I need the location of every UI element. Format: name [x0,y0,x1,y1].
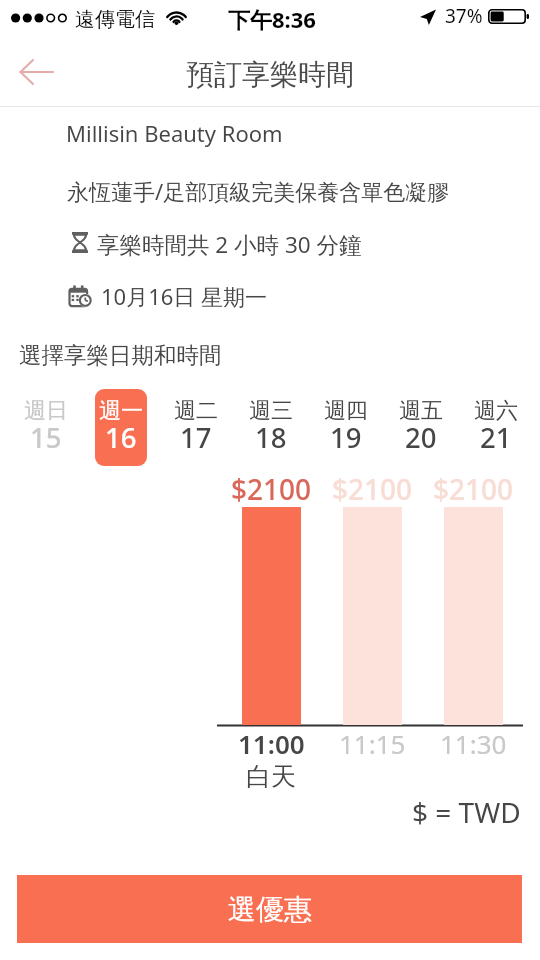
staticText: Millisin Beauty Room [66,118,283,148]
staticText: 週四 [324,397,368,425]
staticText: 週五 [399,397,443,425]
button[interactable]: 選優惠 [17,875,522,943]
button[interactable]: 週六 [458,389,533,466]
staticText: 17 [180,419,212,456]
staticText: 永恆蓮手/足部頂級完美保養含單色凝膠 [67,176,450,206]
button[interactable]: 週五 [383,389,458,466]
staticText: 16 [105,419,137,456]
staticText: 37% [445,3,483,29]
staticText: 11:30 [440,726,507,761]
staticText: $2100 [332,470,413,508]
staticText: 20 [405,419,437,456]
button[interactable]: 週二 [158,389,233,466]
staticText: 享樂時間共 2 小時 30 分鐘 [97,229,362,260]
staticText: $2100 [433,470,514,508]
staticText: 10月16日 星期一 [101,281,268,311]
staticText: 11:00 [238,726,305,761]
button[interactable]: 週日 [8,389,83,466]
button[interactable]: $2100 [221,470,321,790]
staticText: 預訂享樂時間 [186,57,354,92]
staticText: $ = TWD [412,793,521,831]
staticText: 白天 [246,761,296,792]
staticText: 11:15 [339,726,406,761]
staticText: 週日 [24,397,68,425]
staticText: 週二 [174,397,218,425]
staticText: 週一 [99,397,143,425]
button[interactable]: 週一 [83,389,158,466]
staticText: 選擇享樂日期和時間 [19,341,222,369]
button[interactable]: $2100 [322,470,422,790]
staticText: 週三 [249,397,293,425]
staticText: 21 [480,419,512,456]
staticText: 遠傳電信 [75,7,155,32]
staticText: 15 [30,419,62,456]
staticText: 19 [330,419,362,456]
staticText: 週六 [474,397,518,425]
button[interactable]: 週三 [233,389,308,466]
button[interactable]: $2100 [423,470,523,790]
button[interactable]: Back [8,40,64,103]
button[interactable]: 週四 [308,389,383,466]
staticText: 選優惠 [228,892,312,927]
staticText: 18 [255,419,287,456]
staticText: 下午8:36 [228,4,316,34]
staticText: $2100 [231,470,312,508]
